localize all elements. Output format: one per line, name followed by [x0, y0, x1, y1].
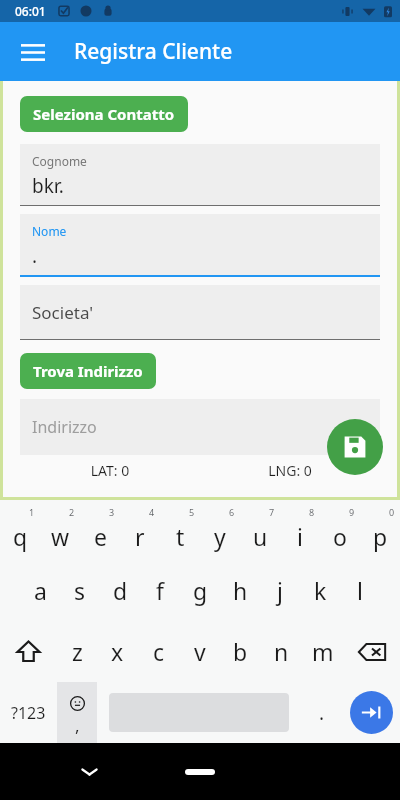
button[interactable]: 0	[360, 500, 400, 560]
button[interactable]: 8	[280, 500, 320, 560]
staticText: LNG: 0	[200, 461, 380, 480]
staticText: 7	[269, 506, 275, 518]
button[interactable]: x	[97, 621, 138, 682]
button[interactable]: a	[20, 560, 60, 621]
button[interactable]: d	[100, 560, 140, 621]
staticText: Registra Cliente	[74, 37, 233, 66]
button[interactable]: Societa'	[20, 285, 380, 340]
staticText: g	[193, 575, 208, 606]
button[interactable]: k	[300, 560, 340, 621]
button[interactable]: g	[180, 560, 220, 621]
staticText: 4	[149, 506, 155, 518]
button[interactable]: Menu	[12, 31, 54, 73]
button[interactable]: 1	[0, 500, 40, 560]
button[interactable]: l	[340, 560, 380, 621]
button[interactable]: m	[302, 621, 343, 682]
staticText: ?123	[11, 702, 46, 724]
button[interactable]: ?123	[0, 682, 57, 743]
staticText: u	[253, 521, 268, 552]
button[interactable]: z	[57, 621, 97, 682]
button[interactable]: Chiudi tastiera	[70, 753, 108, 791]
staticText: .	[319, 700, 325, 726]
staticText: s	[74, 575, 86, 606]
staticText: e	[94, 521, 107, 552]
staticText: l	[357, 575, 363, 606]
button[interactable]: n	[261, 621, 302, 682]
staticText: Seleziona Contatto	[33, 104, 175, 124]
button[interactable]: Maiuscole	[0, 621, 57, 682]
button[interactable]: s	[60, 560, 100, 621]
staticText: x	[111, 636, 124, 667]
staticText: k	[314, 575, 327, 606]
staticText: LAT: 0	[20, 461, 200, 480]
button[interactable]: h	[220, 560, 260, 621]
staticText: bkr.	[32, 173, 64, 199]
staticText: 9	[349, 506, 355, 518]
button[interactable]: 2	[40, 500, 80, 560]
staticText: Cognome	[32, 153, 87, 169]
button[interactable]: f	[140, 560, 180, 621]
staticText: j	[277, 575, 283, 606]
staticText: i	[297, 521, 303, 552]
button[interactable]: Trova Indirizzo	[20, 353, 156, 389]
staticText: t	[176, 521, 185, 552]
staticText: 5	[189, 506, 195, 518]
staticText: 06:01	[15, 3, 46, 19]
button[interactable]: Cancella	[343, 621, 400, 682]
button[interactable]: Indirizzo	[20, 399, 380, 455]
staticText: Indirizzo	[32, 416, 97, 438]
staticText: r	[135, 521, 145, 552]
button[interactable]: 5	[160, 500, 200, 560]
staticText: ,	[75, 714, 80, 737]
staticText: m	[312, 636, 334, 667]
button[interactable]: c	[138, 621, 179, 682]
button[interactable]: 4	[120, 500, 160, 560]
button[interactable]: .	[301, 682, 343, 743]
button[interactable]: 7	[240, 500, 280, 560]
button[interactable]: 6	[200, 500, 240, 560]
button[interactable]: 9	[320, 500, 360, 560]
staticText: 0	[389, 506, 395, 518]
staticText: .	[32, 243, 38, 269]
staticText: h	[233, 575, 248, 606]
button[interactable]: j	[260, 560, 300, 621]
staticText: 6	[229, 506, 235, 518]
staticText: 1	[29, 506, 35, 518]
button[interactable]: Cognome	[20, 144, 380, 206]
button[interactable]: b	[220, 621, 261, 682]
staticText: c	[153, 636, 165, 667]
staticText: v	[194, 636, 206, 667]
staticText: d	[113, 575, 128, 606]
button[interactable]: Seleziona Contatto	[20, 96, 188, 132]
staticText: o	[333, 521, 347, 552]
button[interactable]: Avanti	[350, 691, 393, 734]
staticText: f	[156, 575, 164, 606]
staticText: q	[13, 521, 28, 552]
staticText: Nome	[32, 223, 67, 239]
staticText: p	[373, 521, 388, 552]
button[interactable]: Salva	[327, 419, 383, 475]
staticText: Societa'	[32, 301, 94, 324]
staticText: y	[214, 521, 226, 552]
staticText: w	[51, 521, 70, 552]
button[interactable]: v	[179, 621, 220, 682]
staticText: a	[34, 575, 47, 606]
staticText: n	[274, 636, 289, 667]
staticText: 3	[109, 506, 115, 518]
button[interactable]: Home	[185, 769, 215, 775]
button[interactable]: Emoji	[57, 682, 97, 743]
button[interactable]: 3	[80, 500, 120, 560]
staticText: 2	[69, 506, 75, 518]
staticText: 8	[309, 506, 315, 518]
staticText: b	[233, 636, 248, 667]
staticText: z	[72, 636, 83, 667]
staticText: Trova Indirizzo	[33, 361, 143, 381]
button[interactable]: Nome	[20, 214, 380, 277]
